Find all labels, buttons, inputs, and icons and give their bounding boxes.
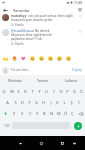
- staticText: Ç: [71, 111, 74, 116]
- button[interactable]: H: [40, 97, 47, 108]
- button[interactable]: P: [64, 86, 71, 97]
- button[interactable]: C: [26, 108, 34, 119]
- button[interactable]: F: [26, 97, 33, 108]
- button[interactable]: Beğen: [78, 29, 83, 34]
- staticText: U: [45, 89, 48, 94]
- button[interactable]: ?123: [1, 119, 12, 132]
- button[interactable]: Merhaba: [0, 75, 29, 86]
- staticText: F: [28, 100, 31, 105]
- button[interactable]: Emoji: [1, 54, 10, 63]
- button[interactable]: Sil: [76, 108, 85, 119]
- button[interactable]: Ğ: [71, 86, 78, 97]
- button[interactable]: Emoji: [37, 54, 46, 63]
- button[interactable]: B: [41, 108, 48, 119]
- staticText: P: [66, 89, 69, 94]
- staticText: T: [31, 89, 34, 94]
- button[interactable]: J: [47, 97, 54, 108]
- button[interactable]: Emoji: [10, 54, 19, 63]
- button[interactable]: Ş: [68, 97, 75, 108]
- staticText: V: [36, 111, 39, 116]
- button[interactable]: Q: [0, 86, 8, 97]
- staticText: 2s: [11, 42, 14, 46]
- button[interactable]: Paylaş: [71, 66, 83, 74]
- staticText: R: [24, 89, 27, 94]
- button[interactable]: E: [15, 86, 22, 97]
- staticText: Yanıtla: [15, 23, 24, 27]
- staticText: Ü: [80, 89, 83, 94]
- button[interactable]: N: [48, 108, 55, 119]
- staticText: ?123: [4, 124, 10, 128]
- staticText: mustafayy cok cok guzel olmus eline sagl…: [11, 14, 73, 22]
- staticText: İ: [78, 100, 80, 105]
- button[interactable]: Z: [10, 108, 18, 119]
- button[interactable]: Tamam: [29, 75, 57, 86]
- button[interactable]: R: [22, 86, 29, 97]
- staticText: W: [10, 89, 14, 94]
- button[interactable]: Emoji: [55, 54, 64, 63]
- button[interactable]: X: [18, 108, 26, 119]
- button[interactable]: kullanıcı: [57, 75, 85, 86]
- button[interactable]: W: [8, 86, 15, 97]
- staticText: O: [59, 89, 63, 94]
- button[interactable]: Emoji: [19, 54, 28, 63]
- button[interactable]: Beğen: [78, 14, 83, 19]
- button[interactable]: K: [54, 97, 61, 108]
- button[interactable]: M: [55, 108, 62, 119]
- button[interactable]: Ç: [69, 108, 76, 119]
- button[interactable]: D: [19, 97, 26, 108]
- button[interactable]: Emoji: [64, 54, 73, 63]
- staticText: L: [63, 100, 66, 105]
- staticText: @eLizaGOzuuuu Ne demek biliyorsun eline …: [11, 29, 55, 41]
- button[interactable]: Geri: [15, 138, 25, 148]
- button[interactable]: T: [29, 86, 36, 97]
- staticText: S: [14, 100, 17, 105]
- button[interactable]: Gönder: [74, 122, 82, 130]
- button[interactable]: .: [70, 119, 74, 132]
- button[interactable]: A: [3, 97, 11, 108]
- staticText: X: [21, 111, 24, 116]
- staticText: M: [57, 111, 61, 116]
- button[interactable]: İ: [75, 97, 82, 108]
- staticText: Yorumlar: [13, 8, 30, 13]
- button[interactable]: Paylaş: [75, 6, 84, 14]
- staticText: kullanıcı: [65, 79, 78, 83]
- button[interactable]: G: [33, 97, 40, 108]
- button[interactable]: I: [50, 86, 57, 97]
- button[interactable]: V: [34, 108, 41, 119]
- staticText: Ö: [64, 111, 68, 116]
- staticText: .: [71, 123, 73, 128]
- staticText: Y: [38, 89, 41, 94]
- staticText: G: [35, 100, 38, 105]
- staticText: D: [21, 100, 24, 105]
- staticText: B: [43, 111, 46, 116]
- staticText: Merhaba: [8, 79, 22, 83]
- staticText: Ş: [70, 100, 73, 105]
- staticText: 13:48: [74, 1, 83, 5]
- staticText: I: [53, 89, 55, 94]
- button[interactable]: Emoji: [28, 54, 37, 63]
- button[interactable]: L: [61, 97, 68, 108]
- button[interactable]: Ö: [62, 108, 69, 119]
- staticText: Z: [13, 111, 16, 116]
- staticText: Yorum ekle...: [11, 68, 31, 72]
- button[interactable]: @eLizaGOzuuuu Ne demek biliyorsun eline …: [0, 29, 85, 46]
- button[interactable]: S: [11, 97, 19, 108]
- button[interactable]: Emoji: [46, 54, 55, 63]
- staticText: Paylaş: [72, 68, 82, 72]
- button[interactable]: Shift: [0, 108, 10, 119]
- staticText: C: [29, 111, 32, 116]
- button[interactable]: Ü: [78, 86, 85, 97]
- button[interactable]: mustafayy cok cok guzel olmus eline sagl…: [0, 14, 85, 27]
- button[interactable]: Geri: [0, 6, 10, 14]
- button[interactable]: Klavyeyi gizle: [70, 139, 78, 147]
- staticText: Yanıtla: [15, 42, 24, 46]
- button[interactable]: O: [57, 86, 64, 97]
- button[interactable]: U: [43, 86, 50, 97]
- button[interactable]: Ana ekran: [36, 138, 46, 148]
- button[interactable]: Son uygulamalar: [57, 138, 67, 148]
- staticText: H: [42, 100, 45, 105]
- staticText: Tamam: [37, 79, 49, 83]
- staticText: Ğ: [73, 89, 76, 94]
- button[interactable]: Y: [36, 86, 43, 97]
